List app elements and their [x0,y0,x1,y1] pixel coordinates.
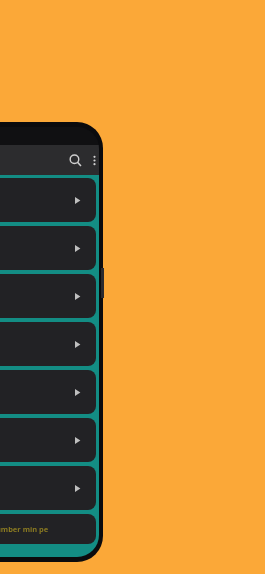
button[interactable]: How do I port my mobile number min pe [0,514,96,544]
button[interactable]: More options [82,148,99,172]
staticText: How do I port my mobile number min pe [0,524,49,534]
button[interactable]: Search [62,147,88,173]
button[interactable]: How do I check my balance? [0,178,96,222]
button[interactable] [0,274,96,318]
button[interactable] [0,322,96,366]
button[interactable]: How do I change my plan? [0,370,96,414]
button[interactable] [0,466,96,510]
button[interactable]: My recharge failed. What should I do? [0,226,96,270]
button[interactable] [0,418,96,462]
